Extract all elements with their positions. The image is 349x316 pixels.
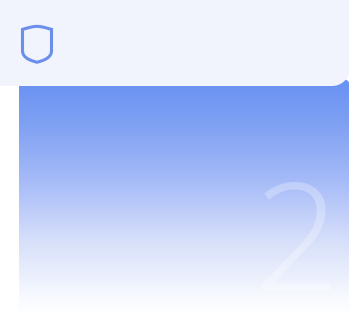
button[interactable]: Privacy	[0, 0, 53, 64]
staticText: 2	[254, 133, 340, 316]
